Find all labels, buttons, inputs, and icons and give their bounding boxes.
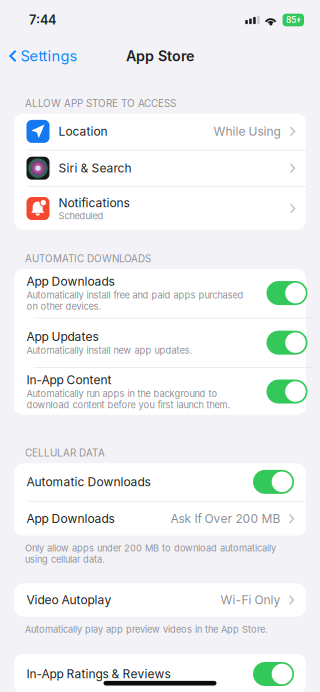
staticText: Location bbox=[58, 124, 107, 139]
staticText: AUTOMATIC DOWNLOADS bbox=[25, 253, 151, 265]
button[interactable]: Settings bbox=[0, 41, 83, 71]
staticText: Automatically install new app updates. bbox=[26, 345, 192, 356]
staticText: ALLOW APP STORE TO ACCESS bbox=[25, 97, 176, 109]
staticText: Siri & Search bbox=[58, 161, 131, 175]
button[interactable]: Notifications bbox=[14, 187, 306, 230]
button[interactable]: In-App Content bbox=[266, 380, 307, 404]
staticText: Only allow apps under 200 MB to download… bbox=[25, 543, 276, 565]
staticText: App Updates bbox=[26, 329, 98, 344]
button[interactable]: Siri & Search bbox=[14, 150, 306, 186]
staticText: Wi-Fi Only bbox=[220, 593, 280, 607]
staticText: 7:44 bbox=[29, 12, 56, 28]
button[interactable]: Video Autoplay bbox=[14, 583, 306, 617]
button[interactable]: Location bbox=[14, 113, 306, 150]
staticText: Automatically install free and paid apps… bbox=[26, 290, 243, 312]
button[interactable]: Automatic Downloads bbox=[253, 470, 294, 494]
staticText: In-App Ratings & Reviews bbox=[26, 667, 170, 681]
staticText: In-App Content bbox=[26, 373, 111, 387]
button[interactable]: App Downloads bbox=[266, 281, 307, 305]
staticText: While Using bbox=[213, 124, 280, 139]
staticText: 85 bbox=[286, 15, 296, 25]
staticText: Ask If Over 200 MB bbox=[170, 511, 280, 526]
staticText: CELLULAR DATA bbox=[25, 447, 105, 459]
staticText: App Store bbox=[126, 47, 194, 65]
staticText: Settings bbox=[20, 47, 77, 65]
staticText: Automatic Downloads bbox=[26, 475, 150, 489]
staticText: Scheduled bbox=[58, 210, 103, 221]
staticText: App Downloads bbox=[26, 274, 114, 289]
staticText: App Downloads bbox=[26, 511, 114, 526]
staticText: Automatically run apps in the background… bbox=[26, 388, 230, 410]
button[interactable]: In-App Ratings & Reviews bbox=[253, 662, 294, 686]
staticText: Video Autoplay bbox=[26, 593, 111, 607]
button[interactable]: App Updates bbox=[266, 331, 307, 355]
button[interactable]: App Downloads bbox=[14, 502, 306, 536]
staticText: Automatically play app preview videos in… bbox=[25, 624, 268, 635]
staticText: Notifications bbox=[58, 196, 129, 210]
